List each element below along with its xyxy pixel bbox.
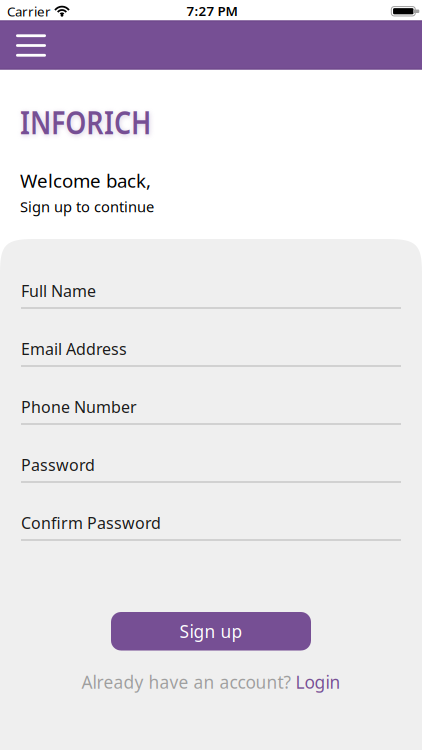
staticText: Password — [21, 454, 95, 475]
staticText: Confirm Password — [21, 512, 161, 533]
staticText: Login — [295, 670, 340, 693]
staticText: Carrier — [7, 2, 51, 20]
staticText: 7:27 PM — [186, 2, 237, 20]
staticText: INFORICH — [20, 100, 176, 143]
staticText: Email Address — [21, 338, 127, 359]
button[interactable]: Login — [295, 670, 340, 693]
staticText: Phone Number — [21, 396, 137, 417]
staticText: Welcome back, — [20, 168, 151, 193]
staticText: Already have an account? — [81, 670, 291, 693]
staticText: Sign up — [179, 620, 242, 643]
staticText: Sign up to continue — [20, 197, 154, 216]
button[interactable]: Menu — [0, 34, 58, 56]
staticText: Full Name — [21, 280, 96, 301]
button[interactable]: Sign up — [111, 612, 311, 650]
